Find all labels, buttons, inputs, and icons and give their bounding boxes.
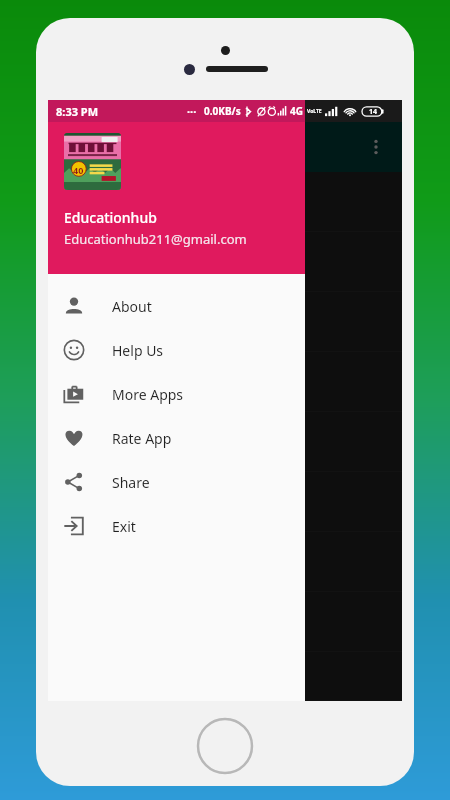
staticText: Exit: [112, 517, 136, 536]
other: Rate App: [63, 427, 85, 449]
staticText: Share: [112, 473, 150, 492]
staticText: 4G: [290, 104, 303, 118]
button[interactable]: Exit: [48, 504, 305, 548]
staticText: 40: [73, 164, 84, 176]
button[interactable]: [48, 652, 402, 701]
button[interactable]: [48, 172, 402, 232]
staticText: Haryana Previous Years...: [64, 136, 269, 159]
other: Share: [63, 471, 85, 493]
button[interactable]: About: [48, 284, 305, 328]
other: More Apps: [63, 383, 85, 405]
other: Help Us: [63, 339, 85, 361]
other: Exit: [63, 515, 85, 537]
staticText: Rate App: [112, 429, 172, 448]
staticText: 8:33 PM: [56, 104, 99, 119]
staticText: Educationhub211@gmail.com: [64, 230, 247, 248]
staticText: ···: [187, 104, 197, 119]
button[interactable]: More options: [354, 125, 398, 169]
button[interactable]: 40: [48, 122, 305, 274]
button[interactable]: More Apps: [48, 372, 305, 416]
staticText: 0.0KB/s: [204, 104, 241, 118]
staticText: Educationhub: [64, 208, 157, 227]
button[interactable]: [48, 472, 402, 532]
button[interactable]: [48, 232, 402, 292]
staticText: Help Us: [112, 341, 164, 360]
button[interactable]: Help Us: [48, 328, 305, 372]
button[interactable]: [48, 412, 402, 472]
other: About: [63, 295, 85, 317]
button[interactable]: Rate App: [48, 416, 305, 460]
staticText: VoLTE: [307, 108, 322, 115]
button[interactable]: [48, 352, 402, 412]
staticText: 14: [369, 107, 378, 117]
staticText: About: [112, 297, 152, 316]
staticText: More Apps: [112, 385, 184, 404]
button[interactable]: [48, 592, 402, 652]
button[interactable]: [48, 292, 402, 352]
button[interactable]: [48, 532, 402, 592]
button[interactable]: Share: [48, 460, 305, 504]
